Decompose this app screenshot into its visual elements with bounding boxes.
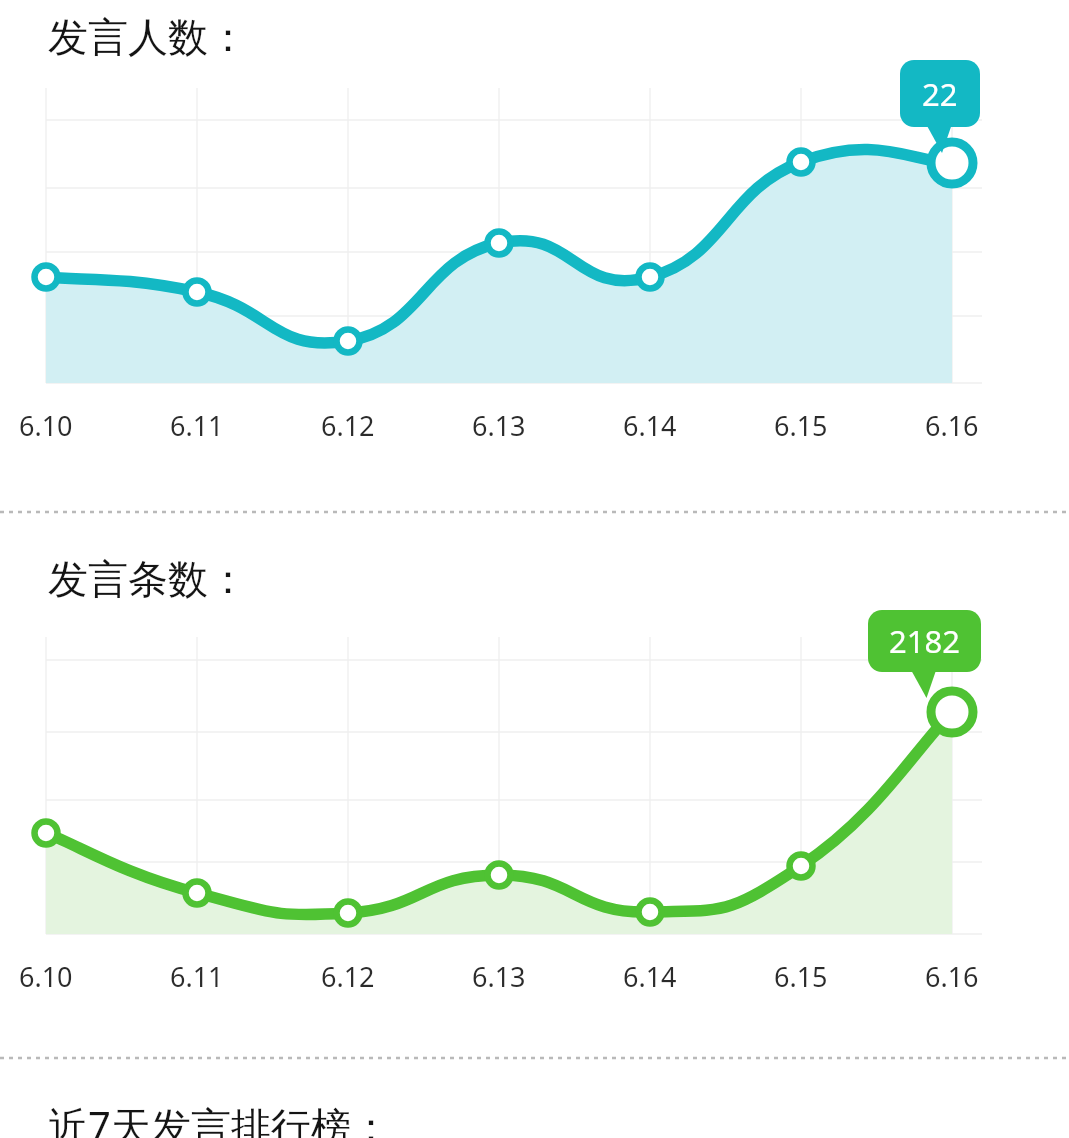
button[interactable]: 发言条数趋势图 [0, 512, 1069, 1058]
button[interactable]: 近7天发言排行榜 [0, 1058, 1069, 1138]
button[interactable]: 发言人数趋势图 [0, 0, 1069, 512]
